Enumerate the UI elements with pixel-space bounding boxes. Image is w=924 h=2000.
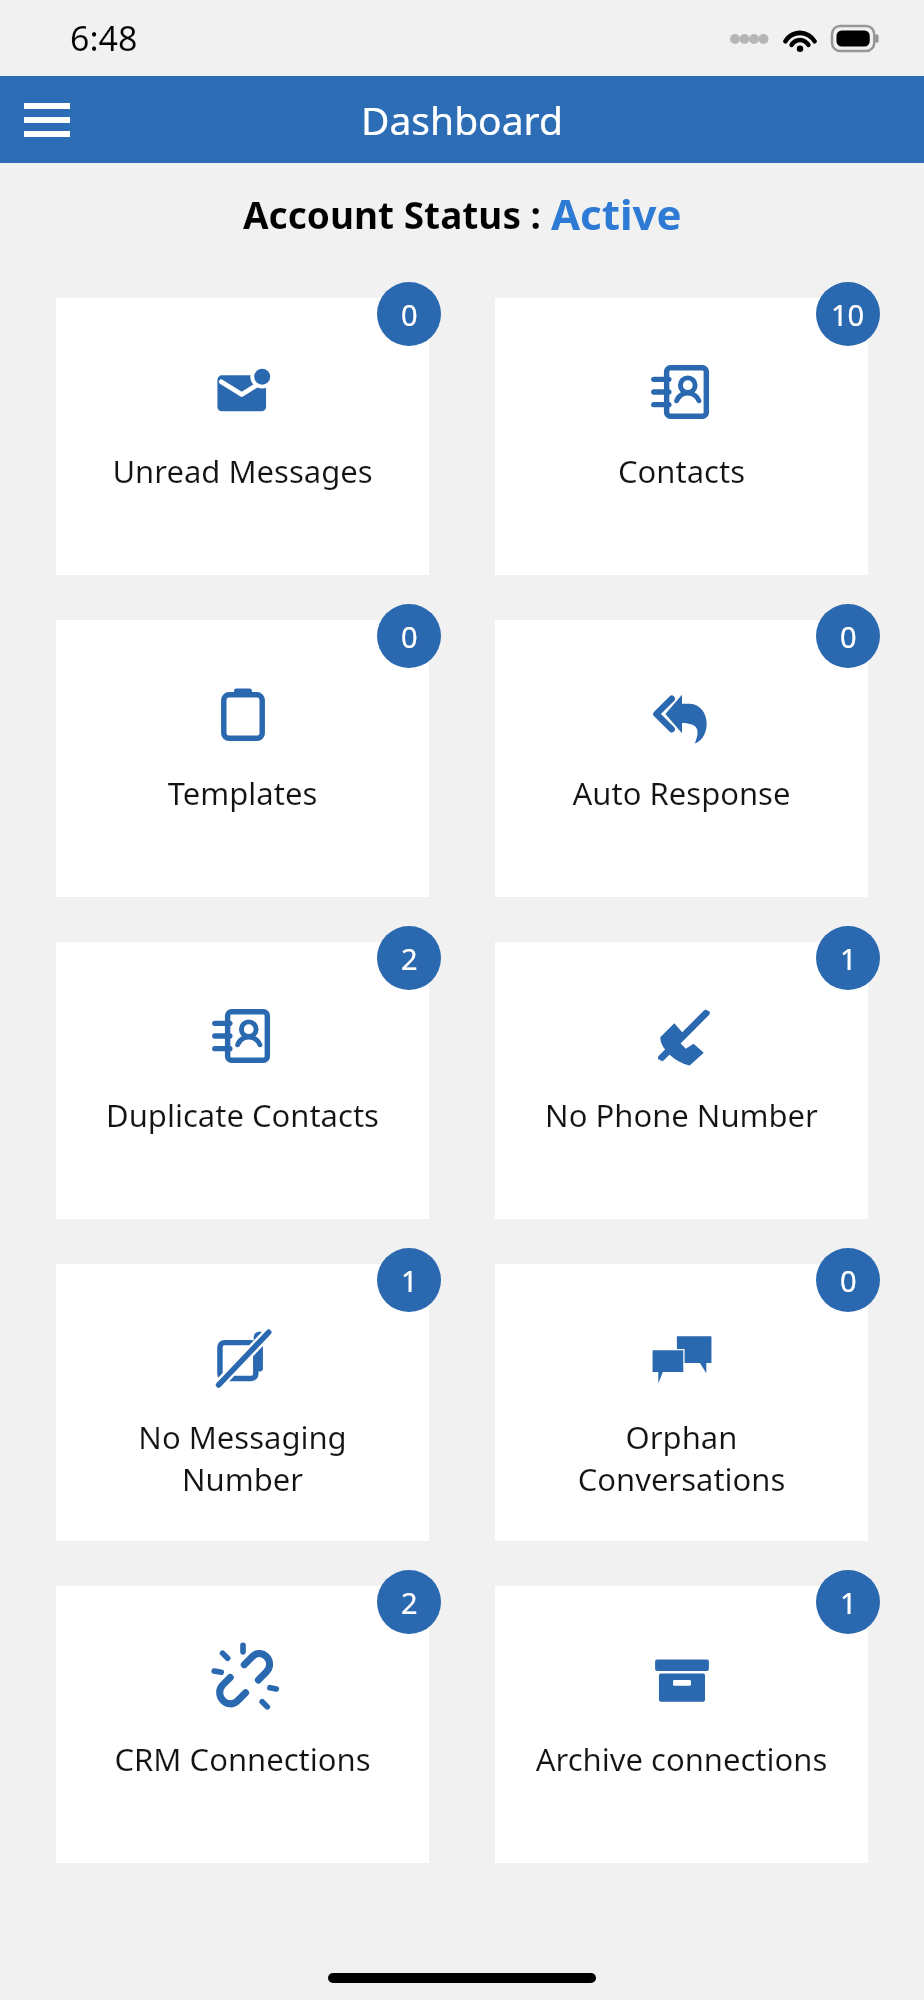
- button[interactable]: Contacts: [495, 298, 868, 575]
- staticText: Orphan Conversations: [499, 1416, 864, 1500]
- staticText: Active: [551, 185, 682, 242]
- staticText: 1: [401, 1261, 418, 1300]
- button[interactable]: Auto Response: [495, 620, 868, 897]
- staticText: 10: [831, 295, 865, 334]
- staticText: No Messaging Number: [60, 1416, 425, 1500]
- staticText: CRM Connections: [60, 1738, 425, 1780]
- staticText: 0: [840, 1261, 857, 1300]
- staticText: 0: [401, 295, 418, 334]
- button[interactable]: No Messaging Number: [56, 1264, 429, 1541]
- button[interactable]: No Phone Number: [495, 942, 868, 1219]
- button[interactable]: Templates: [56, 620, 429, 897]
- staticText: Auto Response: [499, 772, 864, 814]
- button[interactable]: Open navigation menu: [8, 81, 86, 159]
- staticText: 1: [840, 939, 857, 978]
- button[interactable]: CRM Connections: [56, 1586, 429, 1863]
- staticText: Contacts: [499, 450, 864, 492]
- staticText: 2: [401, 1583, 418, 1622]
- button[interactable]: Unread Messages: [56, 298, 429, 575]
- button[interactable]: Orphan Conversations: [495, 1264, 868, 1541]
- staticText: Duplicate Contacts: [60, 1094, 425, 1136]
- button[interactable]: Duplicate Contacts: [56, 942, 429, 1219]
- staticText: Dashboard: [361, 93, 563, 146]
- button[interactable]: Archive connections: [495, 1586, 868, 1863]
- staticText: 2: [401, 939, 418, 978]
- staticText: Templates: [60, 772, 425, 814]
- staticText: No Phone Number: [499, 1094, 864, 1136]
- staticText: 1: [840, 1583, 857, 1622]
- staticText: Unread Messages: [60, 450, 425, 492]
- staticText: 0: [401, 617, 418, 656]
- staticText: 0: [840, 617, 857, 656]
- staticText: 6:48: [70, 15, 138, 61]
- staticText: Archive connections: [499, 1738, 864, 1780]
- staticText: Account Status :: [243, 189, 551, 239]
